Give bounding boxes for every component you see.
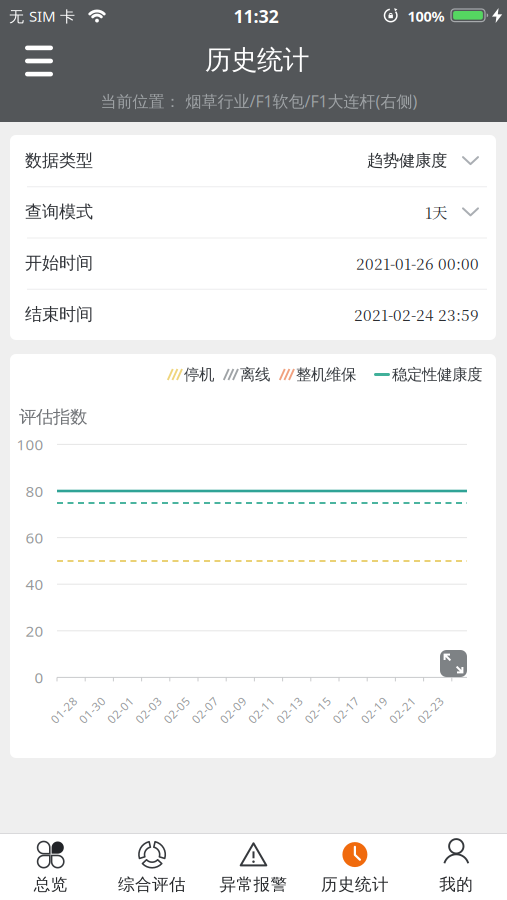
staticText: 离线 [240, 365, 270, 384]
staticText: 历史统计 [321, 874, 389, 895]
staticText: 总览 [34, 874, 68, 895]
staticText: 历史统计 [205, 43, 309, 77]
staticText: 数据类型 [25, 150, 93, 171]
staticText: 11:32 [233, 4, 278, 28]
staticText: 停机 [184, 365, 214, 384]
staticText: 01-30 [76, 702, 108, 718]
staticText: 02-13 [274, 702, 306, 718]
staticText: 无 SIM 卡 [9, 6, 75, 26]
staticText: 01-28 [48, 702, 80, 718]
staticText: 稳定性健康度 [392, 365, 482, 384]
staticText: 我的 [439, 874, 473, 895]
staticText: 02-05 [161, 702, 193, 718]
staticText: 02-23 [415, 702, 447, 718]
staticText: 02-19 [358, 702, 390, 718]
staticText: 综合评估 [118, 874, 186, 895]
button[interactable]: 总览 [0, 833, 101, 899]
button[interactable]: 开始时间 [10, 237, 496, 289]
staticText: 60 [25, 527, 43, 548]
staticText: 评估指数 [19, 406, 87, 428]
staticText: 02-17 [330, 702, 362, 718]
staticText: 100 [16, 434, 43, 455]
staticText: 查询模式 [25, 201, 93, 223]
staticText: 02-11 [245, 702, 277, 718]
staticText: 02-09 [217, 702, 249, 718]
button[interactable]: 查询模式 [10, 186, 496, 237]
staticText: 02-21 [386, 702, 418, 718]
staticText: 02-15 [302, 702, 334, 718]
button[interactable]: Menu [17, 39, 61, 83]
button[interactable]: 异常报警 [203, 833, 304, 899]
staticText: 02-03 [133, 702, 165, 718]
button[interactable]: 我的 [406, 833, 507, 899]
staticText: 80 [25, 481, 43, 501]
staticText: 1天 [425, 201, 447, 223]
staticText: 2021-01-26 00:00 [356, 252, 479, 274]
staticText: 02-01 [104, 702, 136, 718]
staticText: 整机维保 [296, 365, 356, 384]
staticText: 100% [407, 6, 444, 26]
staticText: 2021-02-24 23:59 [354, 303, 479, 325]
button[interactable]: 结束时间 [10, 289, 496, 340]
staticText: 0 [34, 667, 43, 688]
staticText: 趋势健康度 [367, 150, 447, 171]
staticText: 结束时间 [25, 304, 93, 325]
staticText: 异常报警 [219, 874, 287, 895]
staticText: 当前位置： 烟草行业/F1软包/F1大连杆(右侧) [100, 90, 417, 112]
button[interactable]: 综合评估 [101, 833, 203, 899]
button[interactable]: Expand chart [440, 650, 467, 677]
staticText: 02-07 [189, 702, 221, 718]
staticText: 20 [25, 620, 43, 641]
button[interactable]: 数据类型 [10, 135, 496, 186]
staticText: 开始时间 [25, 252, 93, 274]
staticText: 40 [25, 574, 43, 594]
button[interactable]: 历史统计 [304, 833, 406, 899]
